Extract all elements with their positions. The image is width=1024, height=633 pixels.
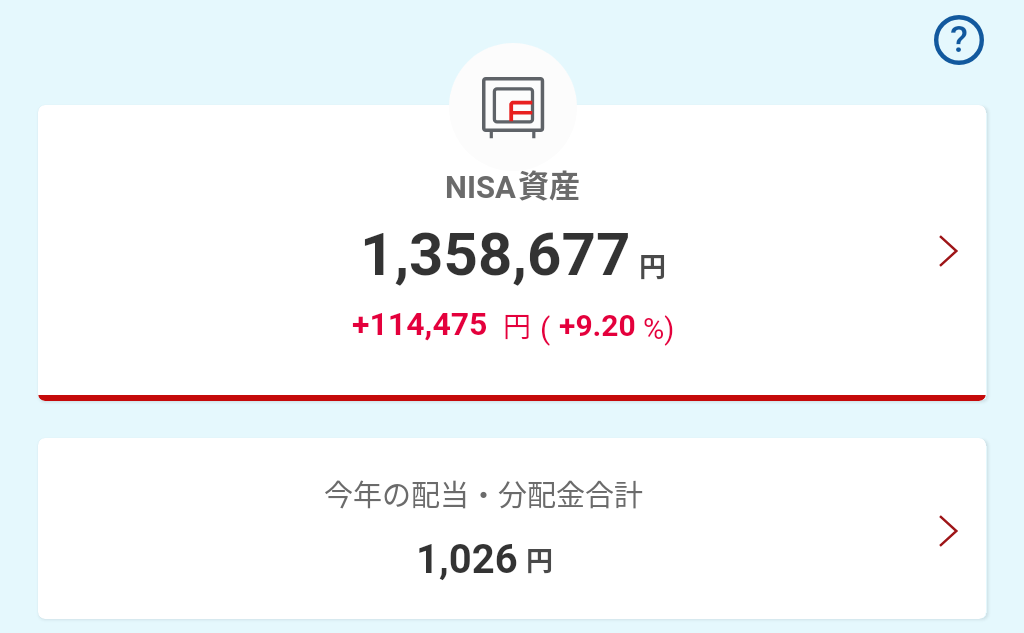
staticText: 1,358,677 [360,219,631,289]
staticText: +9.20 [559,308,636,343]
staticText: 円 [639,246,666,285]
staticText: 資産 [518,161,580,206]
button[interactable]: 今年の配当・分配金合計 [38,438,986,619]
button[interactable]: Help [925,6,993,74]
staticText: +114,475 [352,305,488,343]
staticText: ? [950,18,969,61]
staticText: 円 [503,305,532,346]
staticText: 今年の配当・分配金合計 [324,472,644,514]
staticText: 円 [526,540,553,579]
staticText: 1,026 [416,536,518,583]
staticText: NISA [445,169,516,205]
button[interactable]: NISA [38,105,986,401]
staticText: %) [643,312,675,346]
staticText: ( [540,311,551,346]
